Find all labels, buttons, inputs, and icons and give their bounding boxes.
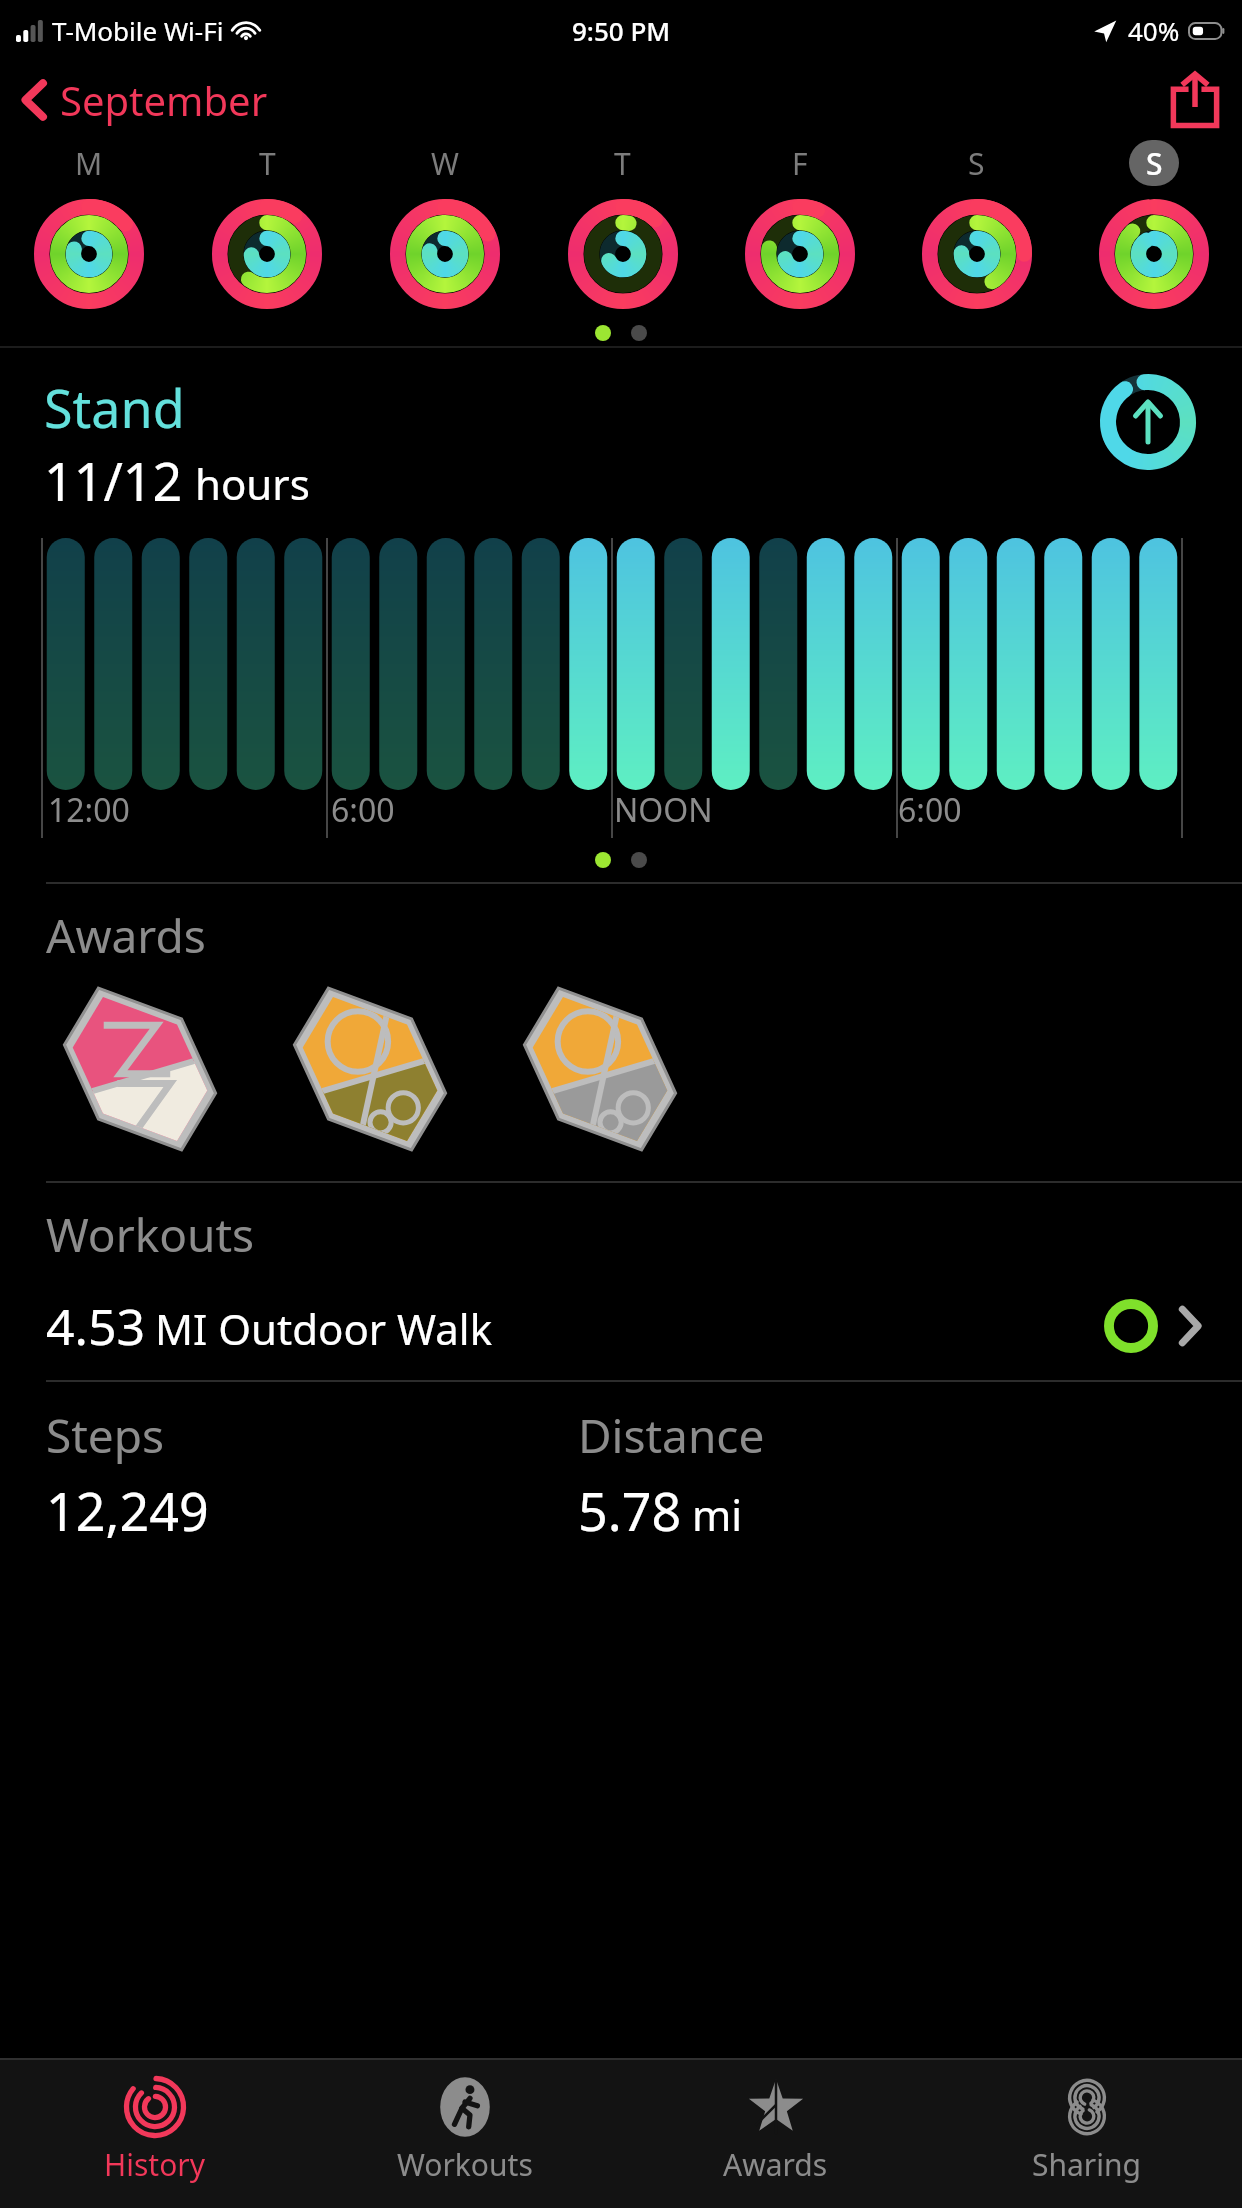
- staticText: S: [968, 143, 985, 184]
- button[interactable]: [534, 199, 711, 309]
- staticText: 6:00: [898, 788, 962, 832]
- button[interactable]: September challenge silver: [510, 983, 690, 1155]
- staticText: T: [614, 143, 631, 184]
- button[interactable]: [356, 199, 534, 309]
- button[interactable]: [178, 199, 356, 309]
- staticText: Workouts: [46, 1203, 255, 1266]
- button[interactable]: Awards: [620, 2060, 931, 2208]
- staticText: Awards: [46, 904, 206, 967]
- staticText: W: [431, 143, 459, 184]
- button[interactable]: [888, 199, 1065, 309]
- staticText: NOON: [614, 788, 713, 832]
- button[interactable]: Perfect Week award: [50, 983, 230, 1155]
- staticText: F: [792, 143, 808, 184]
- staticText: Stand: [44, 372, 185, 443]
- staticText: September: [60, 73, 268, 127]
- staticText: T: [259, 143, 276, 184]
- button[interactable]: History: [0, 2060, 310, 2208]
- staticText: mi: [692, 1486, 743, 1543]
- staticText: Sharing: [1032, 2144, 1141, 2185]
- button[interactable]: Stand: [0, 348, 1242, 882]
- button[interactable]: September challenge gold: [280, 983, 460, 1155]
- staticText: 12:00: [48, 788, 130, 832]
- button[interactable]: 4.53: [0, 1292, 1242, 1380]
- staticText: 4.53: [46, 1292, 146, 1360]
- staticText: History: [104, 2144, 206, 2185]
- button[interactable]: Share: [1148, 63, 1242, 137]
- button[interactable]: September: [0, 65, 284, 135]
- button[interactable]: Steps: [46, 1404, 578, 1546]
- staticText: 5.78: [578, 1475, 682, 1546]
- staticText: 6:00: [331, 788, 395, 832]
- button[interactable]: Distance: [578, 1404, 1242, 1546]
- staticText: M: [75, 143, 103, 184]
- staticText: 12,249: [46, 1475, 209, 1546]
- button[interactable]: [1065, 199, 1242, 309]
- button[interactable]: Sharing: [931, 2060, 1242, 2208]
- staticText: MI Outdoor Walk: [155, 1300, 493, 1357]
- staticText: Workouts: [397, 2144, 533, 2185]
- staticText: Distance: [578, 1404, 765, 1467]
- button[interactable]: [711, 199, 888, 309]
- staticText: hours: [195, 455, 310, 512]
- staticText: 11/12: [44, 445, 183, 516]
- staticText: Steps: [46, 1404, 165, 1467]
- staticText: 9:50 PM: [572, 13, 671, 48]
- staticText: S: [1146, 143, 1163, 184]
- staticText: T-Mobile Wi-Fi: [52, 13, 224, 48]
- button[interactable]: [0, 199, 178, 309]
- staticText: Awards: [723, 2144, 828, 2185]
- staticText: 40%: [1128, 13, 1180, 48]
- button[interactable]: Workouts: [310, 2060, 620, 2208]
